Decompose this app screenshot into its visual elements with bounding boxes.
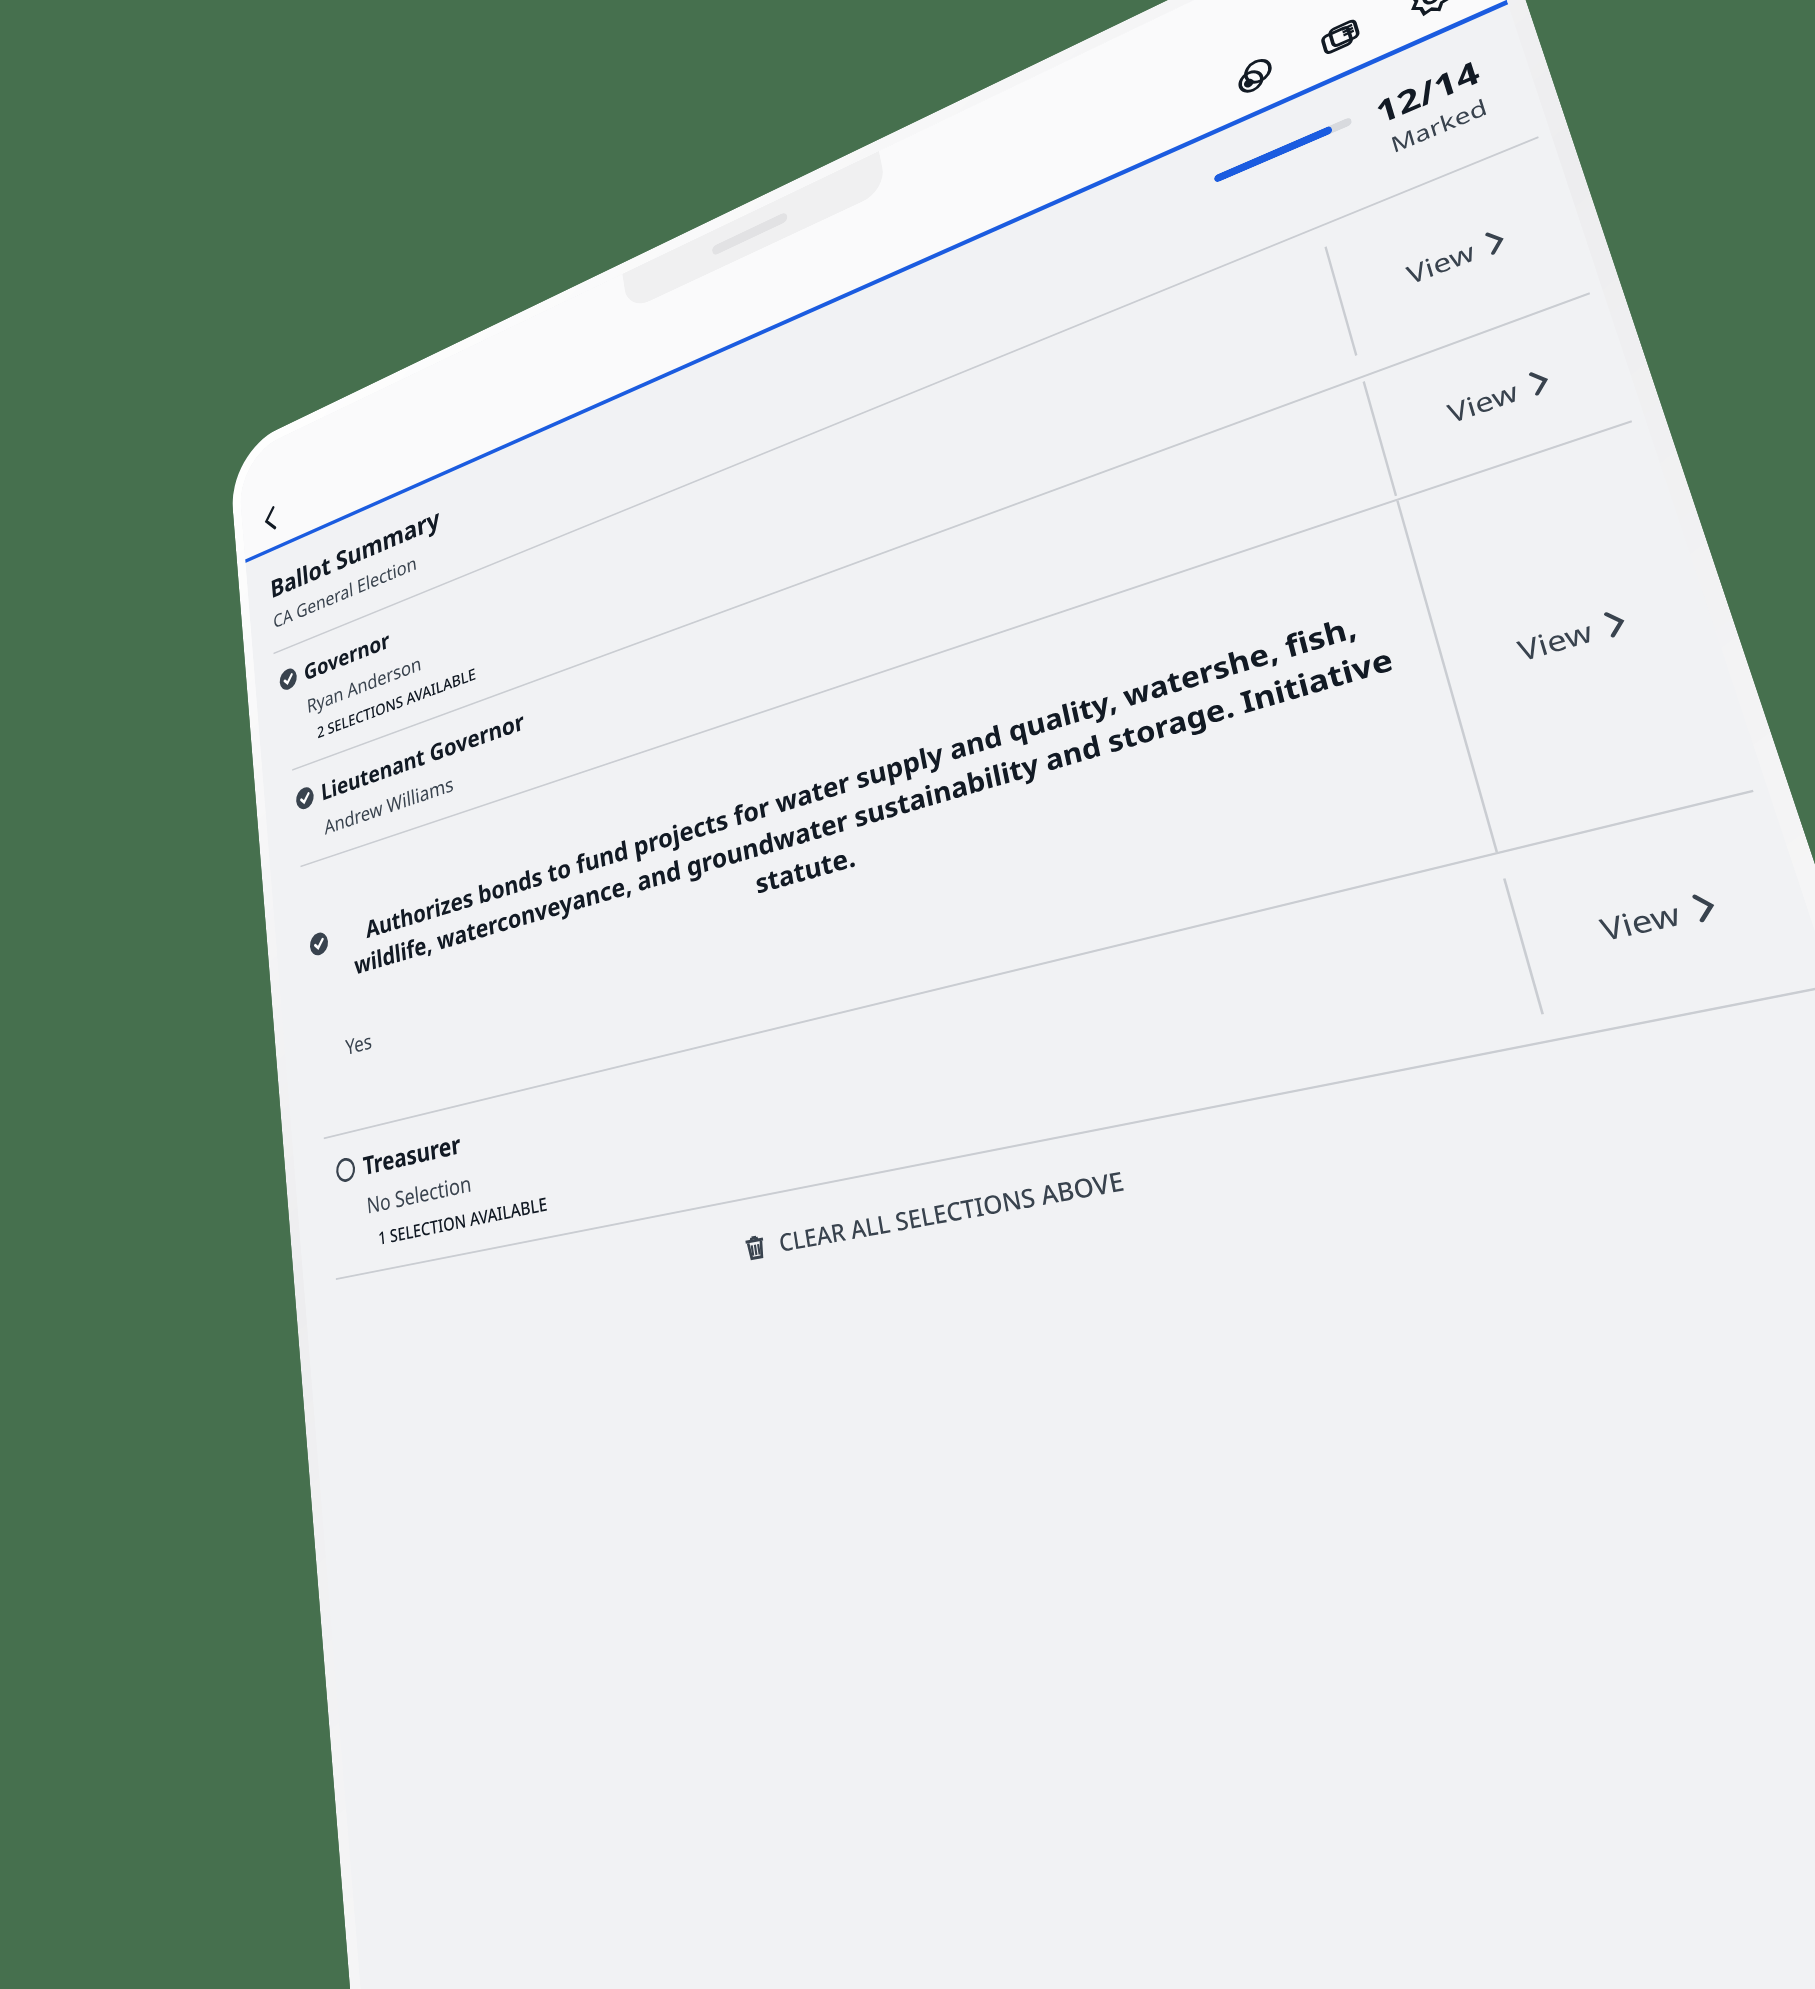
staticText: CLEAR ALL SELECTIONS ABOVE	[777, 1162, 1128, 1259]
staticText: Yes	[344, 1026, 373, 1061]
staticText: View	[1443, 372, 1522, 430]
staticText: Marked	[1387, 91, 1491, 158]
staticText: View	[1595, 892, 1685, 949]
button[interactable]: Accessibility	[1215, 37, 1294, 117]
button[interactable]: Governor	[253, 133, 1602, 780]
button[interactable]: Lieutenant Governor	[263, 290, 1644, 876]
staticText: View	[1513, 611, 1597, 669]
button[interactable]: CLEAR ALL SELECTIONS ABOVE	[305, 1009, 1815, 1355]
staticText: Governor	[303, 624, 391, 686]
staticText: 12/14	[1371, 50, 1485, 133]
staticText: 1 SELECTION AVAILABLE	[377, 1191, 549, 1250]
staticText: Ryan Anderson	[306, 649, 423, 719]
button[interactable]: Authorizes bonds to fund projects for wa…	[271, 418, 1767, 1145]
staticText: Andrew Williams	[323, 769, 455, 840]
staticText: Treasurer	[362, 1126, 463, 1182]
staticText: View	[1402, 233, 1478, 291]
staticText: CA General Election	[272, 549, 418, 633]
button[interactable]: Ballot card	[1300, 0, 1382, 79]
button[interactable]: Settings	[1388, 0, 1475, 39]
staticText: 2 SELECTIONS AVAILABLE	[316, 663, 477, 743]
staticText: Lieutenant Governor	[320, 704, 526, 807]
staticText: Ballot Summary	[269, 500, 442, 605]
staticText: Authorizes bonds to fund projects for wa…	[334, 589, 1437, 1018]
button[interactable]: Back	[252, 490, 291, 548]
staticText: No Selection	[365, 1167, 473, 1220]
button[interactable]: Treasurer	[292, 789, 1815, 1285]
